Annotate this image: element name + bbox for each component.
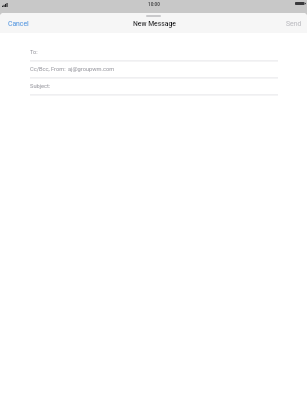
other: Cellular signal <box>2 3 8 7</box>
staticText: To: <box>30 49 38 56</box>
button[interactable]: Cc/Bcc, From: <box>0 62 307 79</box>
other: Drag handle <box>146 15 161 17</box>
staticText: Cc/Bcc, From: <box>30 66 66 73</box>
staticText: New Message <box>133 20 176 28</box>
button[interactable]: Send <box>278 18 307 30</box>
button[interactable]: To: <box>0 45 307 62</box>
staticText: aj@groupwm.com <box>68 66 115 73</box>
button[interactable]: Cancel <box>0 18 37 30</box>
other: Battery <box>295 2 306 5</box>
staticText: Subject: <box>30 83 51 90</box>
staticText: 10:00 <box>148 2 160 7</box>
button[interactable]: Subject: <box>0 79 307 96</box>
staticText: Cancel <box>8 20 29 28</box>
staticText: Send <box>286 20 302 28</box>
